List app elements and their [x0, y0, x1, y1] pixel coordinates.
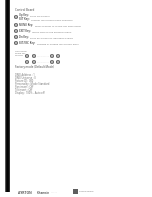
staticText: scroll dn a menu or decrease a value — [30, 36, 73, 39]
staticText: Dn Key: — [19, 35, 29, 39]
button[interactable]: Set key — [14, 41, 18, 45]
button[interactable]: Up key — [14, 15, 18, 19]
button[interactable]: button 0b — [32, 54, 36, 58]
staticText: Factory mode (Default Mode) — [15, 65, 54, 69]
staticText: scroll up a menu — [30, 14, 50, 17]
staticText: return back to the previous menu — [32, 30, 72, 33]
button[interactable]: Down key — [14, 35, 114, 39]
button[interactable]: Exit key — [14, 29, 18, 33]
staticText: - - - - - - - - - - — [37, 61, 49, 64]
button[interactable]: Up key — [14, 13, 114, 21]
staticText: Personality : Mode Standard — [15, 82, 50, 86]
button[interactable]: Exit key — [14, 29, 114, 33]
staticText: - - - - - - - - - - — [37, 55, 49, 58]
button[interactable]: button 0a — [25, 54, 29, 58]
staticText: The control — [15, 50, 27, 53]
staticText: DMX Address : 1 — [15, 73, 35, 77]
button[interactable]: button 1b — [32, 60, 36, 64]
button[interactable]: button 1d — [56, 60, 60, 64]
staticText: Control Board — [79, 190, 94, 193]
button[interactable]: Down key — [14, 35, 18, 39]
staticText: MENU Key: — [19, 23, 34, 27]
staticText: board has — [15, 52, 26, 55]
staticText: Khamsin — [37, 191, 50, 195]
button[interactable]: Set key — [14, 41, 114, 45]
staticText: DMX Universe : 0 — [15, 76, 36, 80]
staticText: Pan invert : Off — [15, 85, 34, 89]
staticText: press to enter or to exit the main menu — [35, 24, 82, 27]
staticText: EXIT Key: — [19, 29, 31, 33]
staticText: six keys — [15, 54, 23, 57]
staticText: SET Key: — [19, 17, 30, 21]
button[interactable]: button 0c — [50, 54, 54, 58]
button[interactable]: button 1a — [25, 60, 29, 64]
staticText: validate or escape the current entry — [37, 42, 79, 45]
staticText: Up Key: — [19, 13, 29, 17]
button[interactable]: button 1c — [50, 60, 54, 64]
button[interactable]: Menu key — [14, 23, 114, 27]
staticText: AYRTON — [18, 190, 32, 195]
button[interactable]: button 0d — [56, 54, 60, 58]
staticText: Fixture ID : 000 — [15, 79, 34, 83]
staticText: Tilt invert : Off — [15, 88, 33, 92]
button[interactable]: Menu key — [14, 23, 18, 27]
staticText: Display : 100% - Auto off — [15, 91, 45, 95]
staticText: - - - - - — [51, 191, 57, 194]
staticText: Control Board — [15, 8, 35, 12]
staticText: confirm the current menu selection — [31, 18, 73, 21]
staticText: SET/ESC Key: — [19, 41, 36, 45]
